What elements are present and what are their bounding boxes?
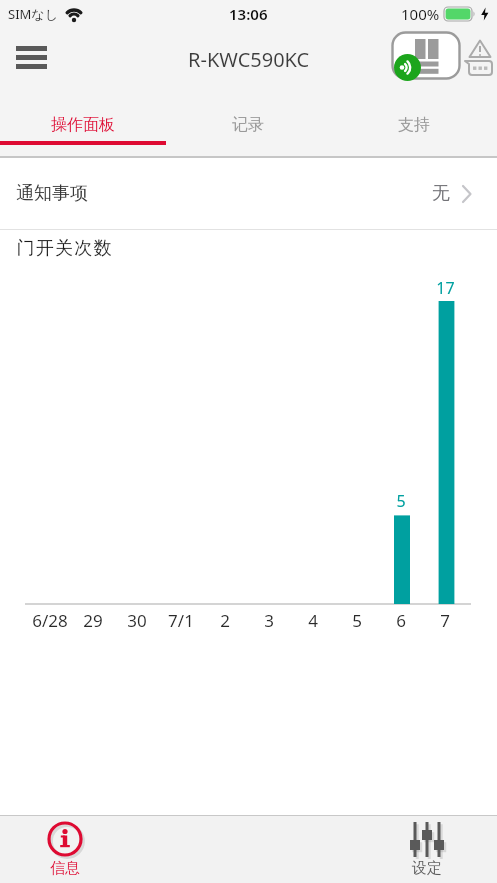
button[interactable] bbox=[464, 39, 494, 77]
staticText: 29 bbox=[83, 609, 103, 632]
staticText: 设定 bbox=[412, 859, 442, 878]
staticText: 7/1 bbox=[168, 609, 194, 632]
staticText: 30 bbox=[127, 609, 147, 632]
button[interactable] bbox=[16, 46, 48, 70]
staticText: 5 bbox=[396, 490, 406, 512]
staticText: 操作面板 bbox=[51, 115, 115, 135]
staticText: 17 bbox=[436, 277, 455, 299]
staticText: 通知事项 bbox=[16, 182, 88, 205]
staticText: 支持 bbox=[398, 115, 430, 135]
staticText: 4 bbox=[308, 609, 318, 632]
staticText: 门开关次数 bbox=[16, 237, 112, 260]
staticText: 5 bbox=[352, 609, 362, 632]
staticText: 无 bbox=[432, 182, 450, 205]
button[interactable]: 信息 bbox=[30, 821, 100, 883]
button[interactable]: 设定 bbox=[392, 821, 462, 883]
staticText: 6/28 bbox=[32, 609, 68, 632]
staticText: 2 bbox=[220, 609, 230, 632]
button[interactable]: 支持 bbox=[331, 90, 497, 156]
button[interactable]: 记录 bbox=[165, 90, 331, 156]
staticText: 100% bbox=[401, 4, 440, 24]
staticText: 7 bbox=[440, 609, 450, 632]
staticText: 3 bbox=[264, 609, 274, 632]
staticText: R-KWC590KC bbox=[188, 46, 310, 73]
staticText: 信息 bbox=[50, 859, 80, 878]
staticText: 记录 bbox=[232, 115, 264, 135]
staticText: 6 bbox=[396, 609, 406, 632]
button[interactable]: 通知事项 bbox=[0, 158, 497, 229]
button[interactable]: 操作面板 bbox=[0, 90, 165, 156]
button[interactable] bbox=[391, 31, 462, 82]
staticText: SIMなし bbox=[8, 5, 58, 23]
staticText: 13:06 bbox=[229, 4, 268, 24]
